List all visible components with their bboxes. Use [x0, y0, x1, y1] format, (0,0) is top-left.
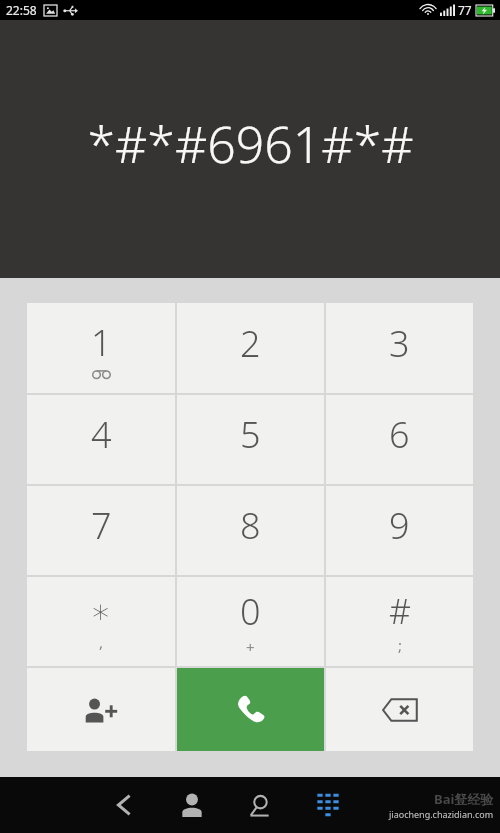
staticText: jiaocheng.chazidian.com	[389, 808, 494, 820]
staticText: 9	[389, 501, 410, 550]
staticText: 0	[240, 587, 261, 636]
staticText: +	[246, 637, 255, 657]
staticText: Bai豋经验	[434, 790, 494, 808]
button[interactable]: 8	[177, 486, 324, 575]
button[interactable]: Dialpad	[294, 777, 362, 833]
button[interactable]: 7	[27, 486, 175, 575]
staticText: 3	[389, 319, 410, 368]
staticText: *#*#6961#*#	[87, 110, 414, 178]
staticText: 5	[240, 410, 261, 459]
button[interactable]: Delete	[326, 668, 473, 751]
button[interactable]: 5	[177, 395, 324, 484]
staticText: #	[389, 588, 411, 634]
staticText: 7	[91, 501, 112, 550]
button[interactable]: Contacts	[158, 777, 226, 833]
staticText: 1	[91, 318, 112, 367]
staticText: ,	[99, 632, 104, 652]
staticText: 6	[389, 410, 410, 459]
button[interactable]: 6	[326, 395, 473, 484]
button[interactable]: #	[326, 577, 473, 666]
staticText: 8	[240, 501, 261, 550]
staticText: 22:58	[6, 2, 37, 18]
staticText: 2	[240, 319, 261, 368]
button[interactable]: 9	[326, 486, 473, 575]
staticText: 77	[458, 2, 472, 18]
button[interactable]: 1	[27, 303, 175, 393]
staticText: ;	[398, 635, 403, 655]
button[interactable]: 4	[27, 395, 175, 484]
button[interactable]: 0	[177, 577, 324, 666]
button[interactable]: Back	[90, 777, 158, 833]
staticText: 4	[91, 410, 112, 459]
button[interactable]: 3	[326, 303, 473, 393]
button[interactable]: Add contact	[27, 668, 175, 751]
staticText: ∗	[90, 591, 112, 631]
button[interactable]: 2	[177, 303, 324, 393]
button[interactable]: Call	[177, 668, 324, 751]
button[interactable]: ∗	[27, 577, 175, 666]
button[interactable]: Search	[226, 777, 294, 833]
